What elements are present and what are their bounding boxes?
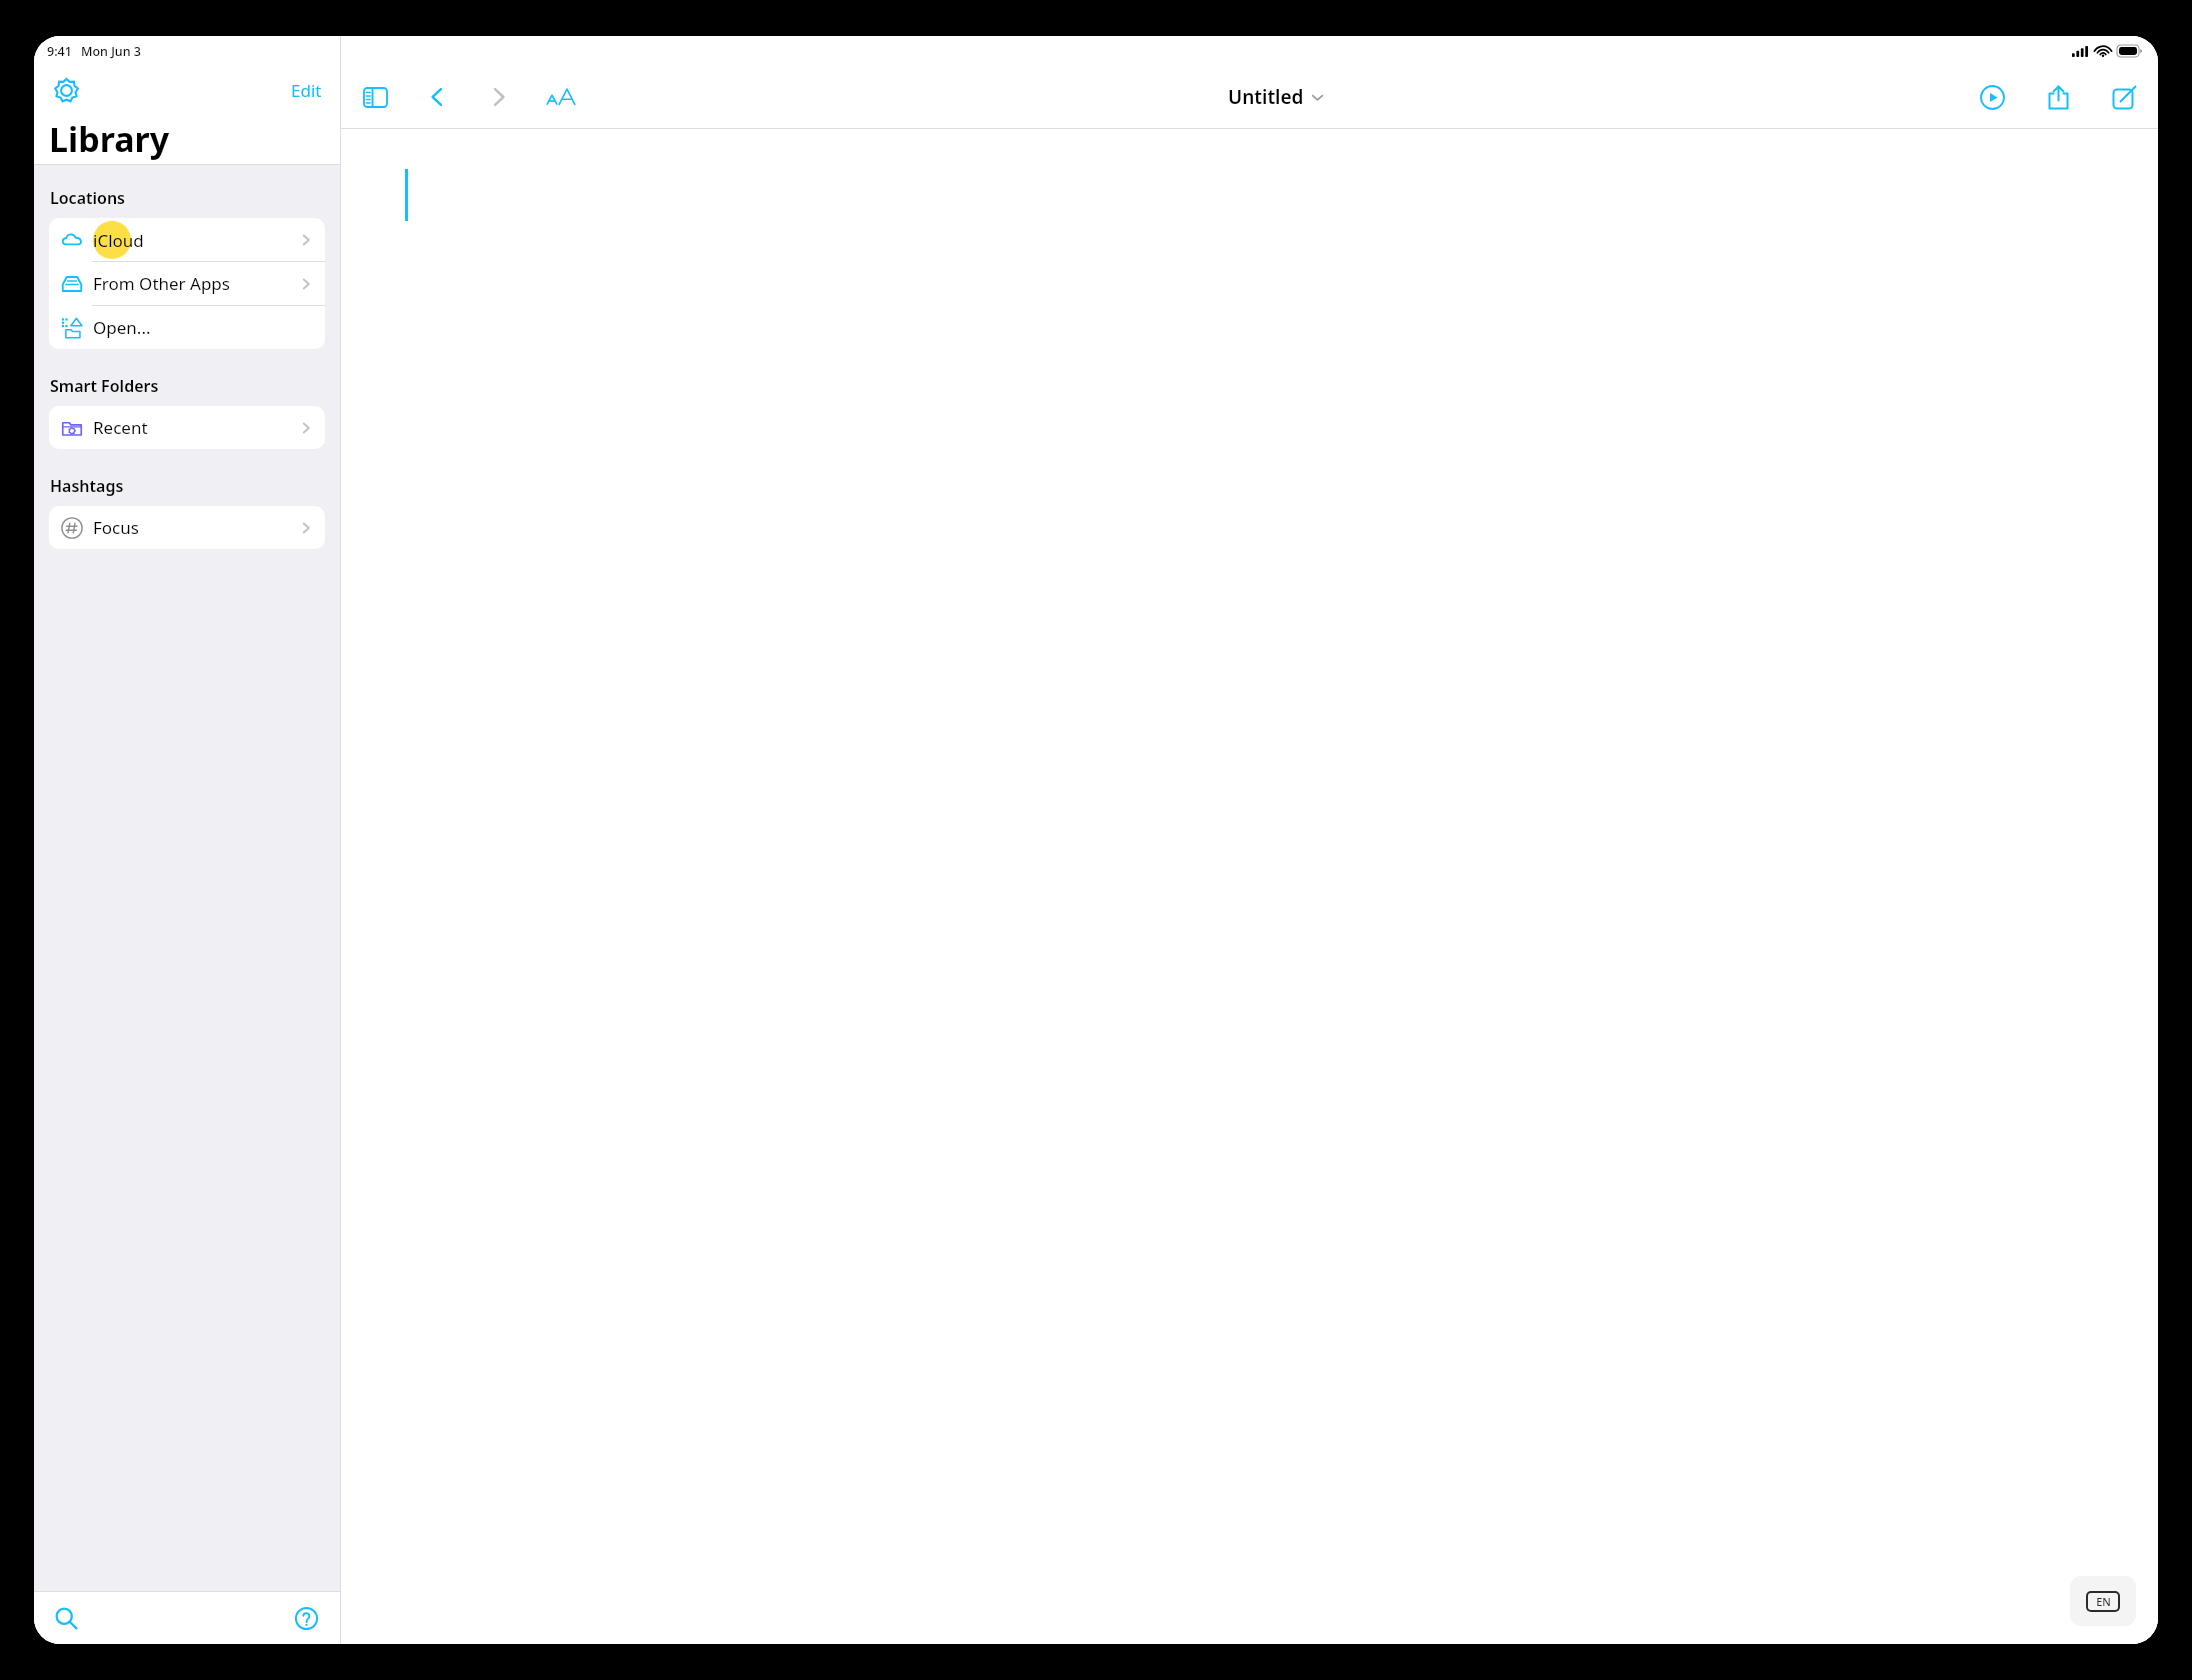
button[interactable]: Back [417, 77, 457, 117]
button[interactable]: iCloud [49, 218, 325, 261]
button[interactable]: Play [1972, 77, 2012, 117]
button[interactable]: Help [286, 1598, 326, 1638]
staticText: Smart Folders [50, 375, 159, 397]
staticText: 9:41 [47, 43, 72, 60]
button[interactable]: From Other Apps [49, 262, 325, 305]
button[interactable]: Open... [49, 306, 325, 349]
button[interactable]: Settings [46, 70, 86, 110]
staticText: Open... [93, 316, 151, 339]
button[interactable]: Search [46, 1598, 86, 1638]
staticText: EN [2096, 1594, 2111, 1609]
button[interactable]: Text size [541, 77, 581, 117]
staticText: Focus [93, 516, 139, 539]
staticText: Locations [50, 187, 125, 209]
button[interactable]: Edit [287, 75, 326, 106]
staticText: Edit [291, 79, 322, 102]
button[interactable]: Recent [49, 406, 325, 449]
button[interactable]: Compose [2104, 77, 2144, 117]
button[interactable]: Untitled [1222, 78, 1330, 116]
staticText: Recent [93, 416, 148, 439]
staticText: iCloud [93, 229, 144, 252]
button[interactable]: Toggle sidebar [355, 77, 395, 117]
staticText: Untitled [1228, 84, 1304, 110]
button[interactable]: Keyboard language EN [2070, 1576, 2136, 1626]
staticText: Library [49, 116, 170, 162]
staticText: From Other Apps [93, 272, 230, 295]
button[interactable]: Forward [479, 77, 519, 117]
staticText: Mon Jun 3 [81, 43, 141, 60]
staticText: Hashtags [50, 475, 124, 497]
button[interactable]: Focus [49, 506, 325, 549]
button[interactable]: Share [2038, 77, 2078, 117]
